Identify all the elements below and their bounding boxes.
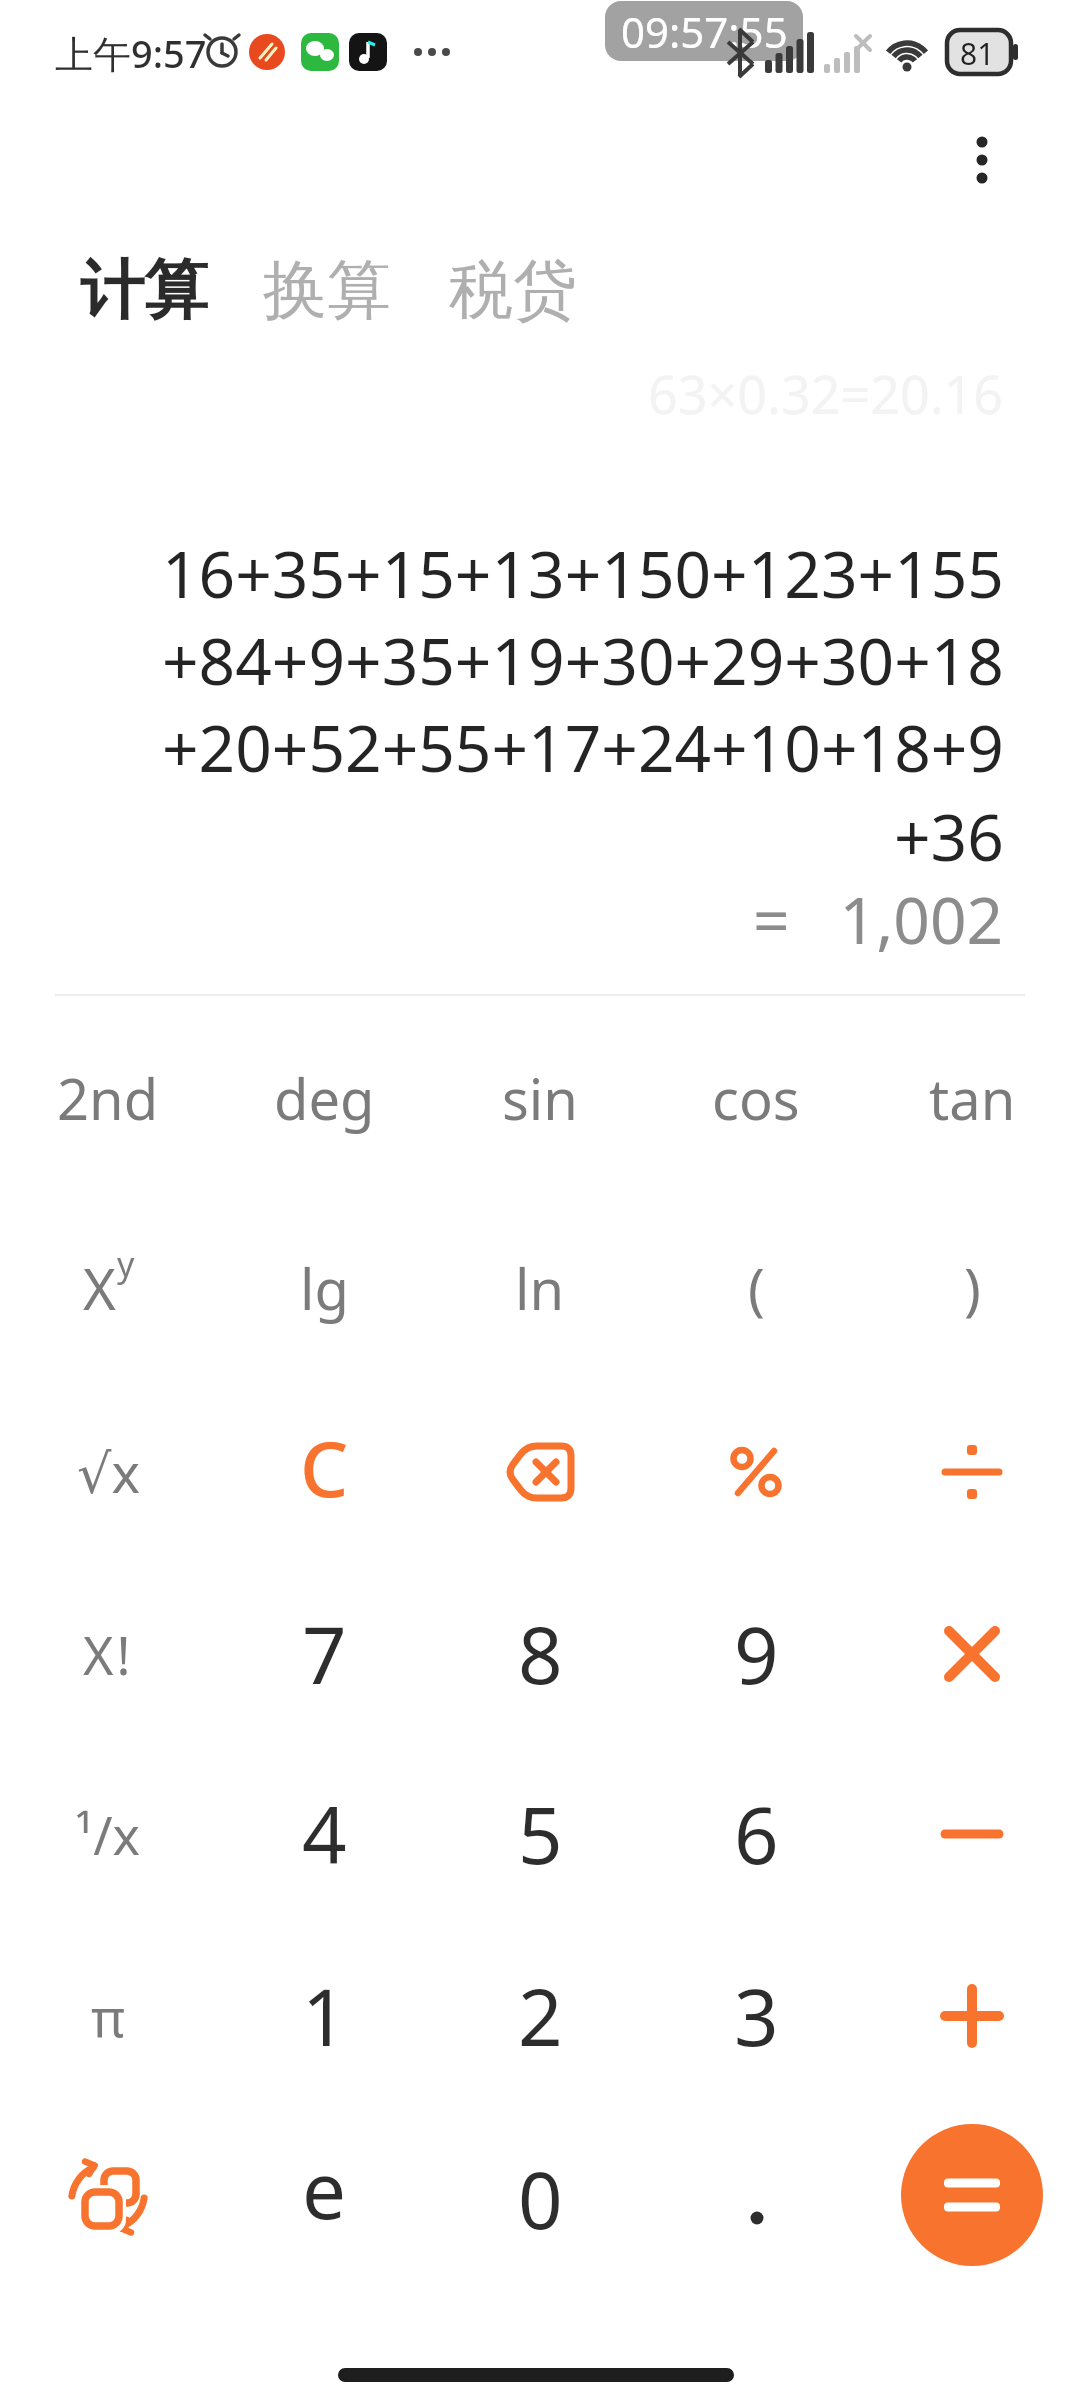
button[interactable]: X! bbox=[0, 1569, 216, 1739]
staticText: 09:57:55 bbox=[621, 3, 788, 60]
button[interactable]: lg bbox=[216, 1203, 432, 1373]
staticText: C bbox=[300, 1416, 349, 1520]
staticText: 0 bbox=[518, 2146, 563, 2252]
button[interactable] bbox=[648, 1387, 864, 1557]
staticText: 8 bbox=[518, 1601, 563, 1707]
button[interactable] bbox=[864, 1387, 1080, 1557]
button[interactable]: tan bbox=[864, 1013, 1080, 1183]
button[interactable] bbox=[648, 2112, 864, 2282]
button[interactable]: C bbox=[216, 1387, 432, 1557]
staticText: X! bbox=[83, 1619, 134, 1690]
staticText: ln bbox=[515, 1250, 565, 1326]
staticText: 5 bbox=[518, 1781, 563, 1887]
staticText: 16+35+15+13+150+123+155 bbox=[162, 530, 1004, 617]
staticText: 6 bbox=[734, 1781, 779, 1887]
staticText: +20+52+55+17+24+10+18+9 bbox=[162, 704, 1004, 791]
button[interactable]: π bbox=[0, 1931, 216, 2101]
staticText: tan bbox=[929, 1060, 1016, 1136]
button[interactable]: X bbox=[0, 1203, 216, 1373]
staticText: ( bbox=[748, 1250, 765, 1326]
staticText: sin bbox=[502, 1060, 578, 1136]
staticText: 2 bbox=[518, 1963, 563, 2069]
button[interactable]: 税贷 bbox=[449, 250, 577, 331]
button[interactable]: 2 bbox=[432, 1931, 648, 2101]
staticText: deg bbox=[274, 1060, 375, 1136]
staticText: y bbox=[117, 1241, 135, 1287]
button[interactable]: 换算 bbox=[263, 250, 391, 331]
button[interactable]: 8 bbox=[432, 1569, 648, 1739]
staticText: e bbox=[302, 2136, 346, 2242]
staticText: = 1,002 bbox=[753, 876, 1004, 963]
button[interactable]: 1 bbox=[216, 1931, 432, 2101]
button[interactable]: deg bbox=[216, 1013, 432, 1183]
button[interactable]: ( bbox=[648, 1203, 864, 1373]
staticText: X bbox=[83, 1250, 116, 1326]
staticText: π bbox=[91, 1981, 125, 2052]
button[interactable] bbox=[952, 122, 1012, 198]
button[interactable] bbox=[864, 1931, 1080, 2101]
staticText: 63×0.32=20.16 bbox=[648, 358, 1004, 429]
staticText: lg bbox=[300, 1250, 349, 1326]
button[interactable]: √x bbox=[0, 1387, 216, 1557]
button[interactable]: sin bbox=[432, 1013, 648, 1183]
button[interactable] bbox=[864, 1749, 1080, 1919]
button[interactable] bbox=[0, 2112, 216, 2282]
staticText: 81 bbox=[960, 33, 995, 74]
staticText: 3 bbox=[734, 1963, 779, 2069]
staticText: 4 bbox=[302, 1781, 347, 1887]
button[interactable] bbox=[432, 1387, 648, 1557]
button[interactable]: cos bbox=[648, 1013, 864, 1183]
staticText: 9 bbox=[734, 1601, 779, 1707]
button[interactable]: 4 bbox=[216, 1749, 432, 1919]
staticText: ¹/x bbox=[75, 1799, 141, 1870]
staticText: ) bbox=[964, 1250, 981, 1326]
button[interactable]: 计算 bbox=[80, 250, 208, 331]
button[interactable]: 7 bbox=[216, 1569, 432, 1739]
button[interactable]: ) bbox=[864, 1203, 1080, 1373]
button[interactable]: ln bbox=[432, 1203, 648, 1373]
staticText: 2nd bbox=[57, 1060, 159, 1136]
staticText: cos bbox=[712, 1060, 800, 1136]
button[interactable]: 6 bbox=[648, 1749, 864, 1919]
button[interactable]: 5 bbox=[432, 1749, 648, 1919]
button[interactable] bbox=[901, 2124, 1043, 2266]
button[interactable]: 9 bbox=[648, 1569, 864, 1739]
button[interactable]: 3 bbox=[648, 1931, 864, 2101]
button[interactable] bbox=[864, 1569, 1080, 1739]
button[interactable]: ¹/x bbox=[0, 1749, 216, 1919]
staticText: √x bbox=[77, 1435, 140, 1509]
staticText: +84+9+35+19+30+29+30+18 bbox=[162, 617, 1004, 704]
button[interactable]: 0 bbox=[432, 2112, 648, 2282]
button[interactable]: e bbox=[216, 2112, 432, 2282]
button[interactable]: 2nd bbox=[0, 1013, 216, 1183]
staticText: +36 bbox=[894, 793, 1004, 880]
staticText: 1 bbox=[302, 1963, 347, 2069]
staticText: 上午9:57 bbox=[55, 27, 207, 79]
staticText: 7 bbox=[302, 1601, 347, 1707]
